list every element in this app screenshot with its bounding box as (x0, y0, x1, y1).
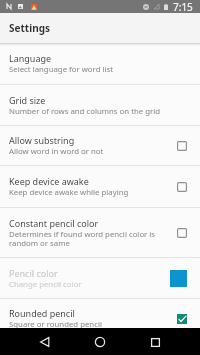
button[interactable]: Rounded pencil (0, 299, 200, 338)
staticText: Grid size (9, 94, 46, 106)
staticText: Keep device awake (9, 175, 89, 187)
staticText: Number of rows and columns on the grid (9, 106, 161, 117)
staticText: Determines if found word pencil color is… (9, 229, 171, 249)
staticText: Rounded pencil (9, 307, 75, 319)
staticText: Square or rounded pencil (9, 319, 102, 330)
button[interactable]: Checked (177, 314, 187, 324)
button[interactable]: Home (87, 329, 113, 355)
staticText: Change pencil color (9, 279, 82, 290)
button[interactable]: Keep device awake (0, 166, 200, 207)
button[interactable]: Unchecked (177, 228, 187, 238)
staticText: Select language for word list (9, 64, 114, 75)
staticText: Language (9, 52, 52, 64)
staticText: Constant pencil color (9, 217, 99, 229)
button[interactable]: Unchecked (177, 182, 187, 192)
button[interactable]: Allow substring (0, 126, 200, 165)
button[interactable]: Grid size (0, 85, 200, 125)
button[interactable]: Constant pencil color (0, 208, 200, 257)
button[interactable]: Unchecked (177, 141, 187, 151)
staticText: Keep device awake while playing (9, 187, 129, 198)
staticText: Settings (9, 21, 50, 35)
staticText: Allow word in word or not (9, 146, 104, 157)
button[interactable]: Recent apps (142, 329, 168, 355)
staticText: Pencil color (9, 267, 58, 279)
staticText: 7:15 (173, 0, 193, 13)
staticText: Allow substring (9, 134, 75, 146)
button[interactable]: Back (32, 329, 58, 355)
button[interactable]: Language (0, 43, 200, 84)
button[interactable]: Pencil color (0, 258, 200, 298)
